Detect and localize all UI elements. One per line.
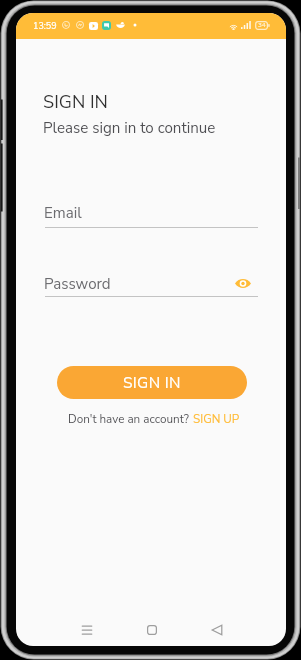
button[interactable]: Recents	[70, 613, 104, 646]
button[interactable]: Show password	[231, 272, 255, 294]
staticText: SIGN IN	[123, 372, 181, 393]
button[interactable]: Back	[200, 613, 234, 646]
button[interactable]: SIGN UP	[193, 411, 240, 427]
button[interactable]: Home	[135, 613, 169, 646]
staticText: Don't have an account?	[68, 411, 193, 427]
staticText: Email	[44, 203, 82, 224]
staticText: SIGN IN	[43, 90, 108, 115]
button[interactable]: SIGN IN	[57, 366, 247, 399]
staticText: Please sign in to continue	[43, 118, 216, 139]
staticText: 34	[258, 21, 266, 30]
staticText: 13:59	[33, 20, 57, 32]
staticText: SIGN UP	[193, 411, 240, 427]
staticText: Password	[44, 274, 111, 295]
